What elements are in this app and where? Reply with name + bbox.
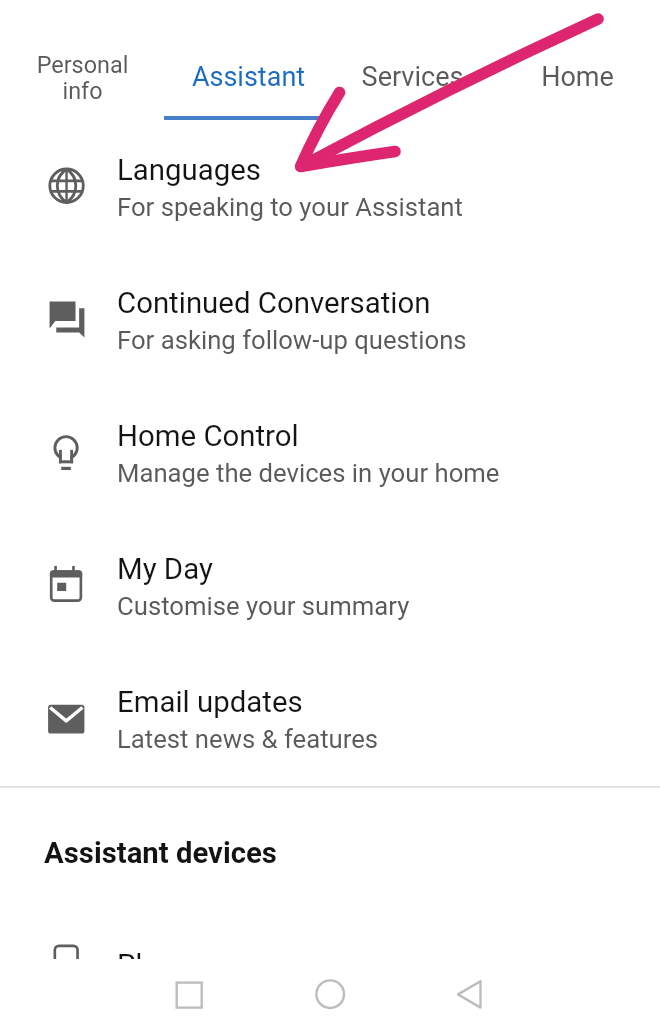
staticText: Assistant devices: [44, 836, 277, 870]
staticText: For asking follow-up questions: [117, 325, 467, 355]
staticText: Email updates: [117, 685, 303, 719]
staticText: Phone: [117, 948, 201, 982]
button[interactable]: Back: [434, 961, 504, 1031]
button[interactable]: Email updates: [0, 665, 660, 798]
staticText: Languages: [117, 153, 261, 187]
staticText: Continued Conversation: [117, 286, 431, 320]
button[interactable]: Continued Conversation: [0, 266, 660, 399]
staticText: Customise your summary: [117, 591, 410, 621]
staticText: Manage the devices in your home: [117, 458, 500, 488]
staticText: My Day: [117, 552, 213, 586]
staticText: Home Control: [117, 419, 299, 453]
staticText: Home: [495, 61, 660, 93]
button[interactable]: Home Control: [0, 399, 660, 532]
button[interactable]: My Day: [0, 532, 660, 665]
button[interactable]: Services: [330, 0, 495, 120]
staticText: Latest news & features: [117, 724, 379, 754]
button[interactable]: Recent apps: [155, 961, 225, 1031]
button[interactable]: Languages: [0, 133, 660, 266]
staticText: For speaking to your Assistant: [117, 192, 463, 222]
button[interactable]: Phone: [0, 905, 660, 961]
staticText: Personal info: [0, 51, 165, 105]
button[interactable]: Personal info: [0, 0, 165, 120]
staticText: Services: [330, 61, 495, 93]
staticText: Assistant: [166, 61, 331, 93]
button[interactable]: Home: [495, 0, 660, 120]
button[interactable]: Assistant: [165, 0, 330, 120]
button[interactable]: Home: [294, 961, 364, 1031]
